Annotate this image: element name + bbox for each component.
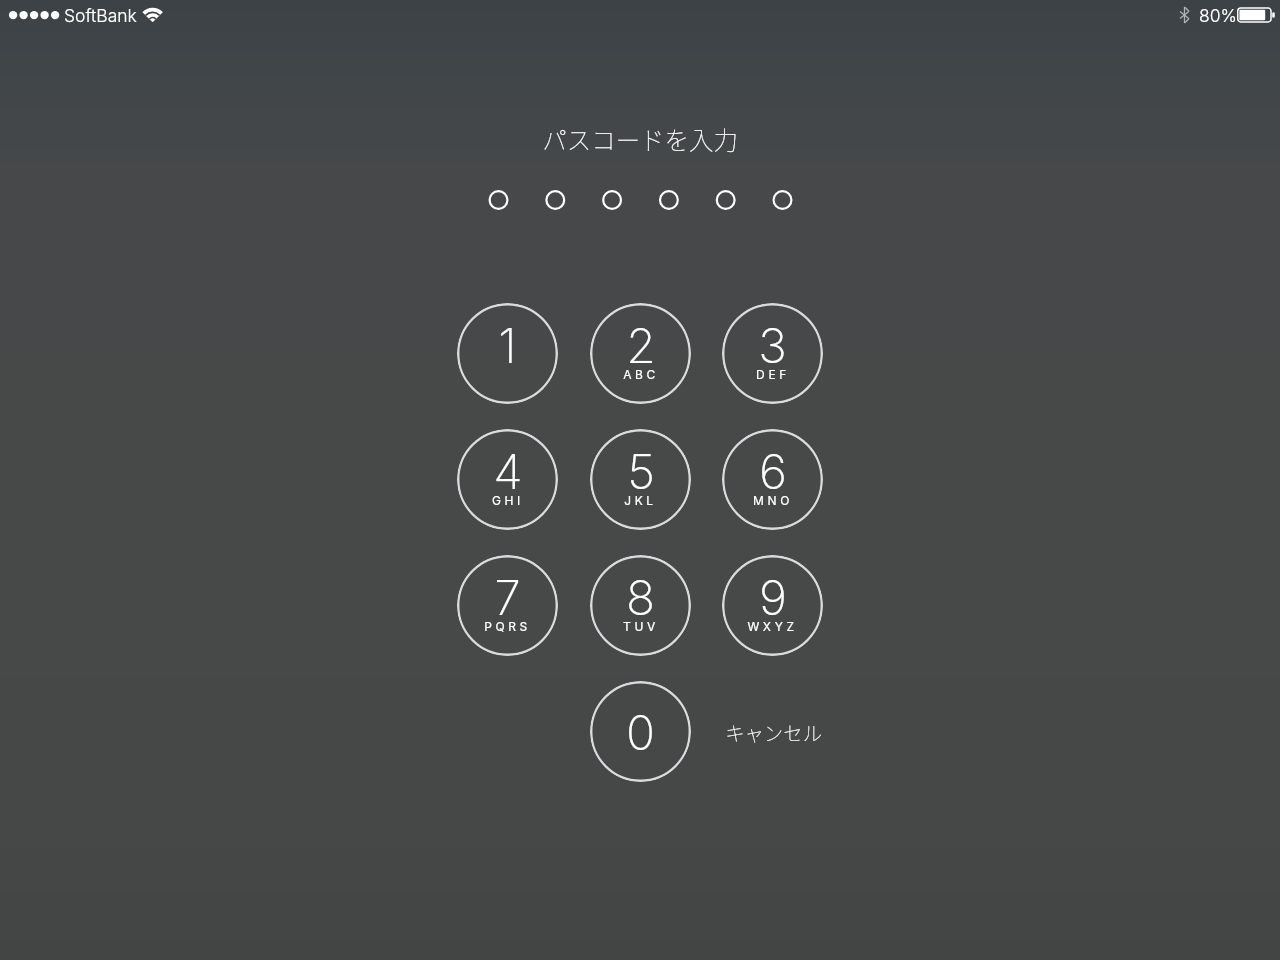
staticText: WXYZ bbox=[747, 619, 798, 634]
button[interactable]: 4 bbox=[457, 429, 558, 530]
staticText: 8 bbox=[626, 568, 655, 626]
staticText: 9 bbox=[759, 568, 787, 626]
staticText: ABC bbox=[623, 367, 659, 382]
staticText: 7 bbox=[494, 568, 521, 626]
staticText: パスコードを入力 bbox=[542, 120, 739, 158]
staticText: JKL bbox=[624, 493, 657, 508]
staticText: MNO bbox=[753, 493, 793, 508]
staticText: 0 bbox=[626, 703, 655, 761]
button[interactable]: キャンセル bbox=[693, 681, 853, 782]
staticText: DEF bbox=[756, 367, 790, 382]
other: Cellular signal bbox=[8, 10, 64, 20]
staticText: 80% bbox=[1199, 5, 1237, 26]
button[interactable]: 8 bbox=[590, 555, 691, 656]
button[interactable]: 5 bbox=[590, 429, 691, 530]
button[interactable]: 0 bbox=[590, 681, 691, 782]
button[interactable]: 9 bbox=[722, 555, 823, 656]
button[interactable]: 6 bbox=[722, 429, 823, 530]
staticText: 2 bbox=[626, 316, 656, 374]
other: Bluetooth bbox=[1180, 7, 1189, 23]
staticText: 5 bbox=[627, 442, 655, 500]
staticText: 4 bbox=[493, 442, 523, 500]
staticText: 1 bbox=[498, 316, 517, 374]
button[interactable]: 1 bbox=[457, 303, 558, 404]
staticText: SoftBank bbox=[64, 5, 137, 26]
staticText: キャンセル bbox=[725, 718, 822, 746]
staticText: TUV bbox=[623, 619, 659, 634]
button[interactable]: 7 bbox=[457, 555, 558, 656]
other: Wi-Fi bbox=[141, 1, 165, 24]
staticText: GHI bbox=[492, 493, 524, 508]
button[interactable]: 2 bbox=[590, 303, 691, 404]
staticText: 3 bbox=[758, 316, 787, 374]
other: Battery 80 percent bbox=[1237, 7, 1275, 23]
staticText: 6 bbox=[759, 442, 787, 500]
staticText: PQRS bbox=[484, 619, 531, 634]
button[interactable]: 3 bbox=[722, 303, 823, 404]
